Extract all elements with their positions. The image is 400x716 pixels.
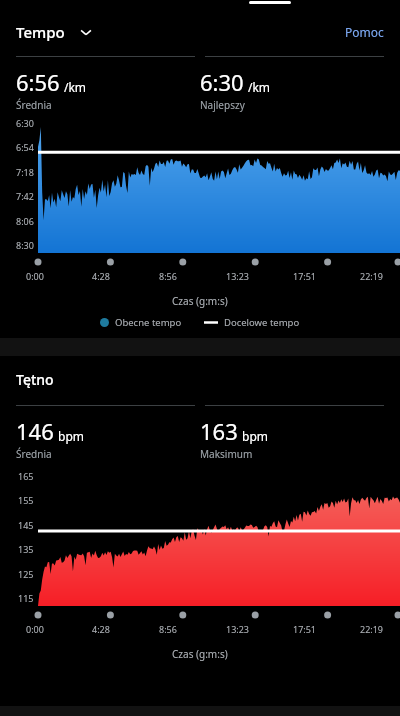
staticText: 22:19 <box>360 270 384 282</box>
staticText: 17:51 <box>293 270 317 282</box>
staticText: Maksimum <box>200 447 253 461</box>
staticText: 4:28 <box>92 623 110 635</box>
staticText: 8:56 <box>159 623 177 635</box>
staticText: 4:28 <box>92 270 110 282</box>
staticText: 146 <box>16 416 54 446</box>
staticText: 163 <box>200 416 238 446</box>
other: Rozwiń <box>79 25 93 39</box>
staticText: 145 <box>18 519 34 531</box>
staticText: 8:30 <box>16 239 34 251</box>
staticText: bpm <box>242 428 268 444</box>
staticText: 125 <box>18 568 34 580</box>
staticText: /km <box>248 79 271 95</box>
staticText: bpm <box>58 428 84 444</box>
staticText: 135 <box>18 543 34 555</box>
staticText: 115 <box>18 592 34 604</box>
staticText: Tempo <box>16 22 65 42</box>
staticText: Tętno <box>16 370 54 389</box>
staticText: Czas (g:m:s) <box>172 647 228 661</box>
staticText: Obecne tempo <box>115 316 182 329</box>
staticText: Pomoc <box>345 24 384 40</box>
staticText: 13:23 <box>226 623 250 635</box>
staticText: 6:56 <box>16 67 60 97</box>
staticText: 13:23 <box>226 270 250 282</box>
staticText: 7:18 <box>16 166 34 178</box>
staticText: 0:00 <box>26 270 44 282</box>
button[interactable]: Tempo <box>16 22 101 42</box>
button[interactable]: Pomoc <box>345 24 384 40</box>
staticText: Czas (g:m:s) <box>172 294 228 308</box>
staticText: 6:54 <box>16 141 34 153</box>
staticText: 8:56 <box>159 270 177 282</box>
staticText: Najlepszy <box>200 98 245 112</box>
staticText: 0:00 <box>26 623 44 635</box>
staticText: 17:51 <box>293 623 317 635</box>
staticText: 7:42 <box>16 190 34 202</box>
staticText: 22:19 <box>360 623 384 635</box>
staticText: 6:30 <box>200 67 244 97</box>
staticText: 165 <box>18 470 34 482</box>
staticText: Średnia <box>16 447 52 461</box>
staticText: Docelowe tempo <box>224 316 300 329</box>
staticText: 155 <box>18 494 34 506</box>
staticText: 8:06 <box>16 215 34 227</box>
staticText: Średnia <box>16 98 52 112</box>
staticText: 6:30 <box>16 117 34 129</box>
staticText: /km <box>64 79 87 95</box>
